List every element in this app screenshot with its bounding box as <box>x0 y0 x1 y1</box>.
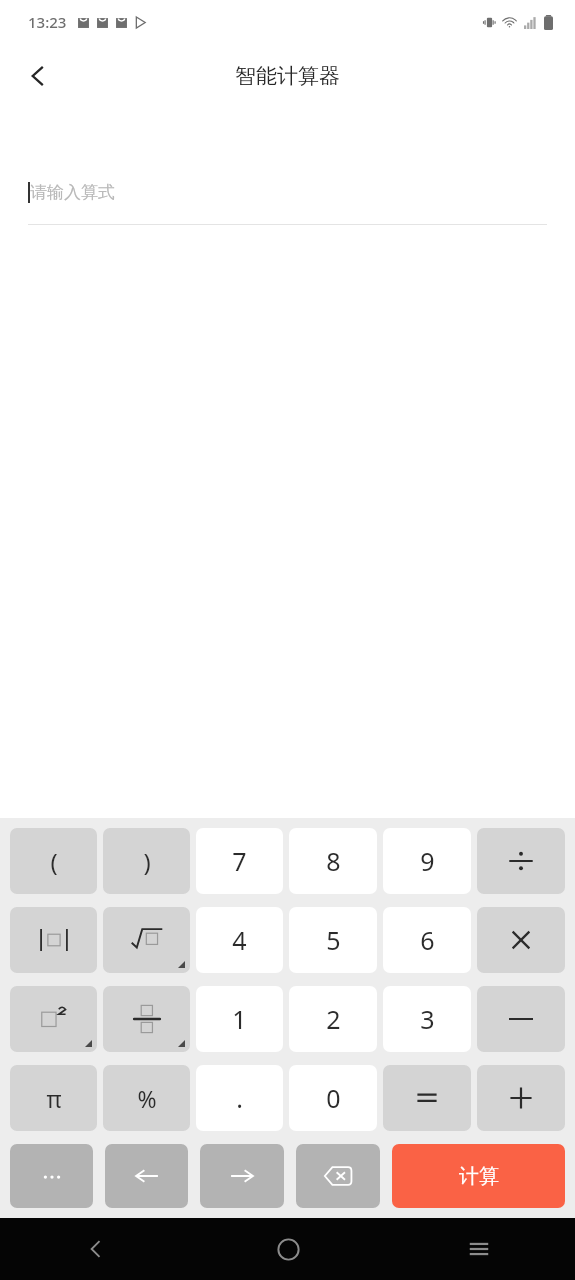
button[interactable]: Absolute value <box>10 907 97 973</box>
button[interactable]: Square root <box>103 907 190 973</box>
button[interactable]: Square <box>10 986 97 1052</box>
button[interactable]: 4 <box>196 907 283 973</box>
button[interactable]: 0 <box>289 1065 377 1131</box>
button[interactable]: 8 <box>289 828 377 894</box>
staticText: ( <box>50 845 58 878</box>
button[interactable]: Multiply <box>477 907 565 973</box>
staticText: 计算 <box>459 1164 499 1189</box>
staticText: 智能计算器 <box>235 63 340 89</box>
button[interactable]: 9 <box>383 828 471 894</box>
button[interactable]: 3 <box>383 986 471 1052</box>
button[interactable]: ) <box>103 828 190 894</box>
staticText: 9 <box>420 844 435 878</box>
staticText: 0 <box>326 1081 341 1115</box>
staticText: 请输入算式 <box>30 182 115 203</box>
button[interactable]: 7 <box>196 828 283 894</box>
staticText: . <box>236 1081 243 1115</box>
staticText: 8 <box>326 844 341 878</box>
staticText: 1 <box>232 1002 247 1036</box>
button[interactable]: Move right <box>200 1144 284 1208</box>
button[interactable]: Fraction <box>103 986 190 1052</box>
button[interactable]: Home <box>192 1218 384 1280</box>
staticText: 3 <box>420 1002 435 1036</box>
button[interactable]: 5 <box>289 907 377 973</box>
staticText: % <box>137 1083 157 1114</box>
button[interactable]: Backspace <box>296 1144 380 1208</box>
button[interactable]: 请输入算式 <box>28 170 547 214</box>
staticText: 5 <box>326 923 341 957</box>
button[interactable]: Minus <box>477 986 565 1052</box>
staticText: 13:23 <box>28 12 67 32</box>
button[interactable]: 2 <box>289 986 377 1052</box>
staticText: π <box>46 1083 62 1114</box>
staticText: 6 <box>420 923 435 957</box>
staticText: 2 <box>326 1002 341 1036</box>
button[interactable]: 1 <box>196 986 283 1052</box>
button[interactable]: ( <box>10 828 97 894</box>
staticText: ) <box>143 845 151 878</box>
button[interactable]: More <box>10 1144 93 1208</box>
button[interactable]: 6 <box>383 907 471 973</box>
button[interactable]: % <box>103 1065 190 1131</box>
button[interactable]: 计算 <box>392 1144 565 1208</box>
button[interactable]: Divide <box>477 828 565 894</box>
staticText: 4 <box>232 923 247 957</box>
button[interactable]: Back <box>12 50 64 102</box>
button[interactable]: π <box>10 1065 97 1131</box>
staticText: 7 <box>232 844 247 878</box>
button[interactable]: Recent apps <box>383 1218 575 1280</box>
button[interactable]: Move left <box>105 1144 188 1208</box>
button[interactable]: . <box>196 1065 283 1131</box>
button[interactable]: Back <box>0 1218 192 1280</box>
button[interactable]: Equals <box>383 1065 471 1131</box>
button[interactable]: Plus <box>477 1065 565 1131</box>
